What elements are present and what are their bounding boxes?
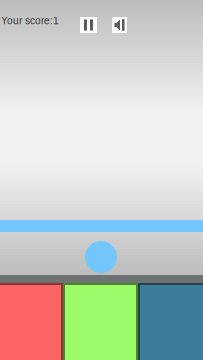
button[interactable]: Pause: [80, 17, 97, 33]
staticText: Your score:1: [1, 15, 59, 26]
button[interactable]: Blue tile: [138, 283, 203, 360]
button[interactable]: Red tile: [0, 283, 63, 360]
button[interactable]: Toggle sound: [112, 17, 127, 33]
button[interactable]: Green tile: [63, 283, 138, 360]
